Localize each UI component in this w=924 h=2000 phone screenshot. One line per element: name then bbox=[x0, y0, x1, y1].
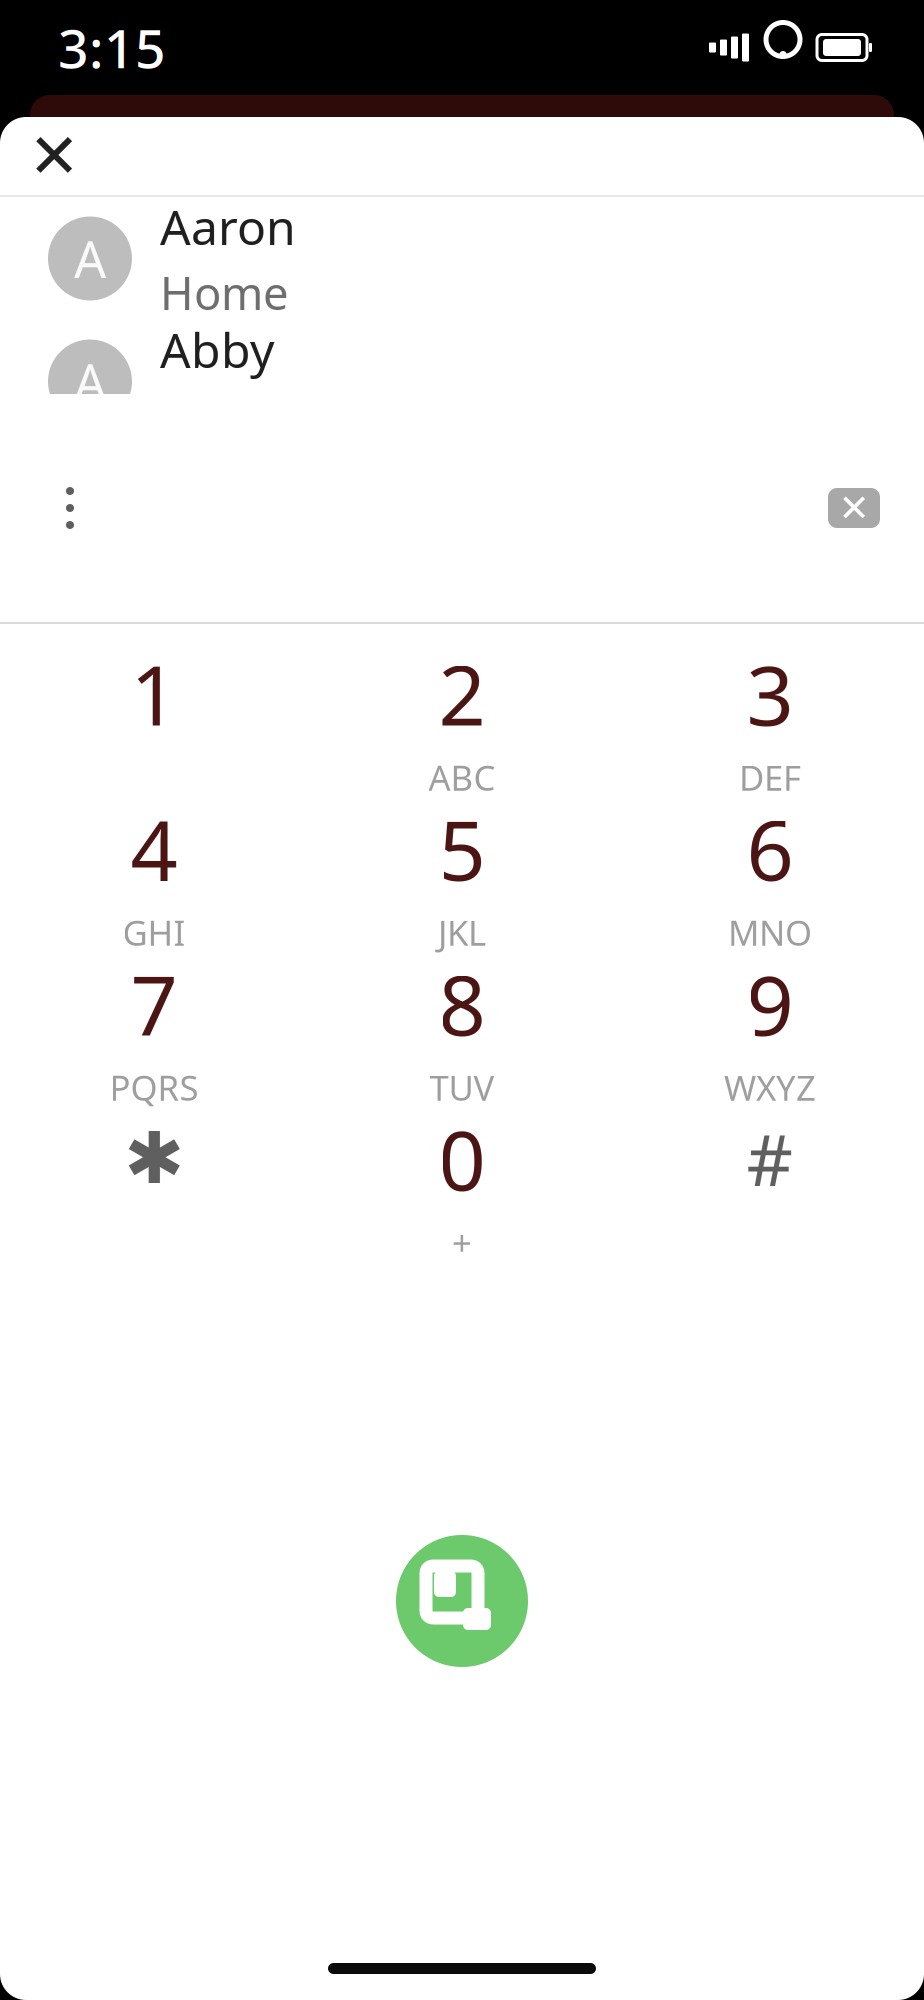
button[interactable]: Pound bbox=[616, 1107, 924, 1262]
button[interactable]: 2 bbox=[308, 642, 616, 797]
button[interactable]: 7 bbox=[0, 952, 308, 1107]
staticText: ✕ bbox=[838, 487, 869, 529]
staticText: 3:15 bbox=[58, 12, 166, 83]
button[interactable]: 1 bbox=[0, 642, 308, 797]
staticText: 5 bbox=[438, 794, 485, 903]
button[interactable]: Close bbox=[6, 117, 102, 195]
button[interactable]: Star bbox=[0, 1107, 308, 1262]
staticText: 8 bbox=[438, 949, 485, 1058]
staticText: WXYZ bbox=[724, 1064, 816, 1110]
button[interactable]: More options bbox=[22, 458, 118, 558]
staticText: Aaron bbox=[160, 194, 296, 258]
staticText: A bbox=[74, 348, 106, 415]
staticText: ✕ bbox=[28, 121, 79, 191]
staticText: TUV bbox=[429, 1064, 494, 1110]
staticText: 4 bbox=[130, 794, 177, 903]
staticText: 9 bbox=[746, 949, 793, 1058]
staticText: DEF bbox=[739, 754, 801, 800]
button[interactable]: 8 bbox=[308, 952, 616, 1107]
staticText: + bbox=[452, 1219, 472, 1265]
button[interactable]: 0 bbox=[308, 1107, 616, 1262]
staticText: 7 bbox=[130, 949, 177, 1058]
staticText: Home bbox=[160, 262, 289, 322]
button[interactable]: A bbox=[0, 197, 924, 320]
staticText: 0 bbox=[438, 1104, 485, 1213]
staticText: JKL bbox=[438, 909, 486, 955]
staticText: ✱ bbox=[124, 1118, 184, 1199]
staticText: A bbox=[74, 225, 106, 292]
staticText: 1 bbox=[130, 639, 177, 748]
button[interactable]: A bbox=[0, 320, 924, 443]
staticText: 2 bbox=[438, 639, 485, 748]
staticText: Abby bbox=[160, 317, 274, 381]
staticText: 3 bbox=[746, 639, 793, 748]
staticText: 6 bbox=[746, 794, 793, 903]
staticText: # bbox=[746, 1111, 793, 1206]
button[interactable]: 3 bbox=[616, 642, 924, 797]
button[interactable]: 5 bbox=[308, 797, 616, 952]
button[interactable]: Call bbox=[382, 1521, 542, 1681]
staticText: ABC bbox=[428, 754, 495, 800]
staticText: PQRS bbox=[109, 1064, 198, 1110]
button[interactable]: 4 bbox=[0, 797, 308, 952]
staticText: MNO bbox=[728, 909, 812, 955]
button[interactable]: 9 bbox=[616, 952, 924, 1107]
button[interactable]: 6 bbox=[616, 797, 924, 952]
staticText: GHI bbox=[122, 909, 185, 955]
button[interactable]: Backspace bbox=[806, 458, 902, 558]
